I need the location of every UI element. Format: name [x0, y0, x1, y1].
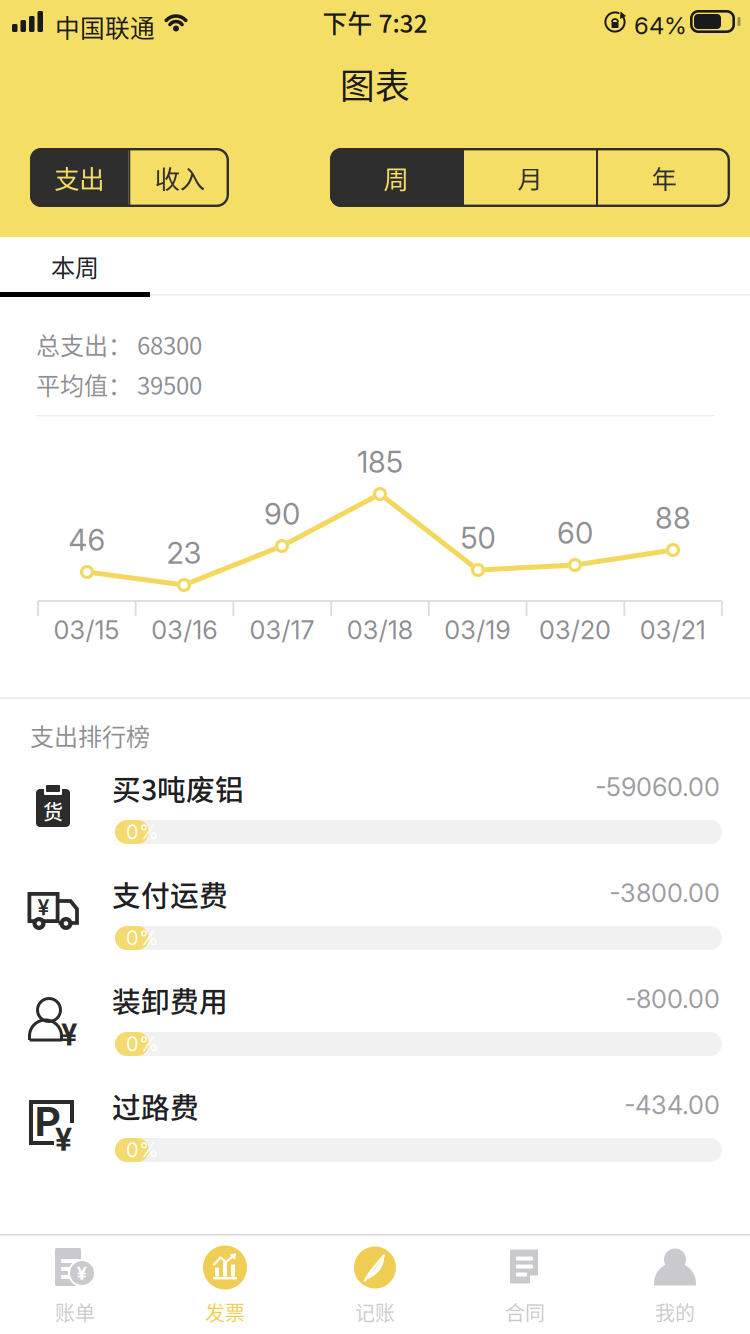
button[interactable]: 货	[0, 765, 750, 871]
staticText: 03/18	[347, 615, 413, 645]
staticText: 03/17	[249, 615, 314, 645]
staticText: 03/20	[539, 615, 611, 645]
staticText: 装卸费用	[112, 979, 228, 1021]
staticText: ¥	[76, 1262, 87, 1284]
staticText: 货	[43, 796, 63, 825]
staticText: 买3吨废铝	[112, 767, 244, 809]
staticText: 0%	[126, 820, 158, 844]
staticText: P	[35, 1097, 60, 1146]
staticText: 支付运费	[112, 873, 228, 915]
staticText: 03/15	[53, 615, 119, 645]
button[interactable]: 周	[330, 148, 462, 207]
staticText: 03/16	[151, 615, 217, 645]
staticText: 88	[655, 500, 691, 536]
staticText: 0%	[126, 1138, 158, 1162]
staticText: ¥	[55, 1121, 72, 1158]
staticText: 账单	[55, 1297, 95, 1326]
staticText: 月	[517, 159, 542, 196]
staticText: 03/19	[444, 615, 510, 645]
staticText: -59060.00	[595, 772, 720, 802]
staticText: ¥	[37, 895, 49, 920]
staticText: 过路费	[112, 1085, 199, 1127]
staticText: 平均值： 39500	[36, 367, 202, 402]
button[interactable]: ¥	[0, 977, 750, 1083]
staticText: 64%	[634, 11, 687, 40]
staticText: -3800.00	[609, 878, 720, 908]
button[interactable]: 记账	[300, 1231, 450, 1334]
staticText: 我的	[655, 1297, 695, 1326]
button[interactable]: 支出	[30, 148, 128, 207]
staticText: -434.00	[624, 1090, 720, 1120]
button[interactable]: ¥	[0, 1231, 150, 1334]
button[interactable]: 本周	[0, 237, 150, 295]
button[interactable]: ¥	[0, 871, 750, 977]
staticText: 总支出： 68300	[36, 327, 202, 362]
staticText: 90	[264, 496, 300, 532]
staticText: 发票	[205, 1297, 245, 1326]
staticText: ¥	[61, 1017, 77, 1052]
staticText: 下午 7:32	[322, 4, 427, 40]
staticText: 23	[166, 535, 201, 571]
button[interactable]: 发票	[150, 1231, 300, 1334]
staticText: 周	[383, 159, 408, 196]
staticText: 年	[651, 159, 676, 196]
staticText: 0%	[126, 926, 158, 950]
staticText: 本周	[51, 249, 99, 283]
button[interactable]: 月	[464, 148, 596, 207]
staticText: 中国联通	[55, 9, 155, 45]
staticText: 46	[68, 522, 105, 558]
staticText: 60	[557, 515, 593, 551]
button[interactable]: 合同	[450, 1231, 600, 1334]
staticText: 图表	[340, 59, 410, 109]
staticText: 记账	[355, 1297, 395, 1326]
staticText: 支出排行榜	[30, 718, 150, 753]
staticText: 03/21	[640, 615, 706, 645]
button[interactable]: 收入	[130, 148, 229, 207]
staticText: 185	[357, 444, 403, 480]
staticText: 合同	[505, 1297, 545, 1326]
button[interactable]: 我的	[600, 1231, 750, 1334]
staticText: -800.00	[625, 984, 720, 1014]
staticText: 0%	[126, 1032, 158, 1056]
staticText: 支出	[54, 159, 104, 196]
button[interactable]: P	[0, 1083, 750, 1189]
staticText: 50	[460, 520, 495, 556]
staticText: 收入	[155, 159, 205, 196]
button[interactable]: 年	[598, 148, 730, 207]
